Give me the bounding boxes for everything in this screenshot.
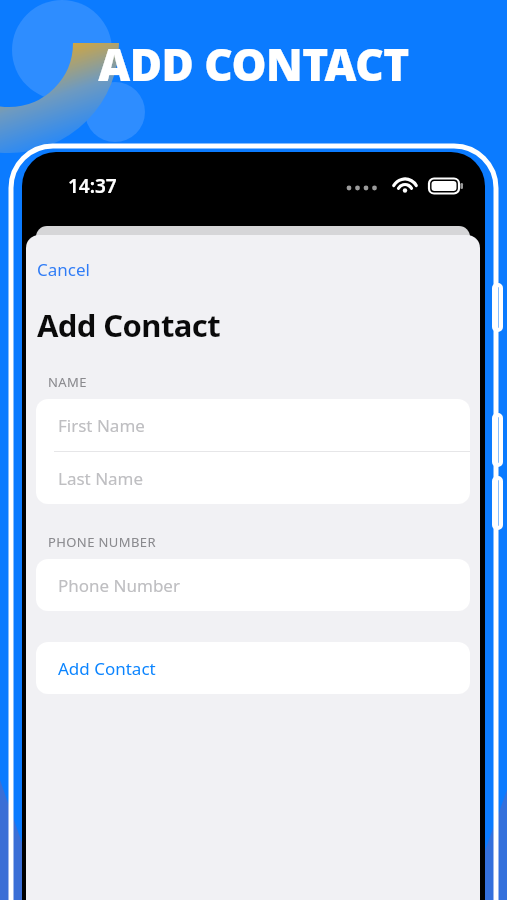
button[interactable]: Last Name	[36, 452, 470, 504]
button[interactable]: Phone Number	[36, 559, 470, 611]
staticText: PHONE NUMBER	[48, 533, 156, 551]
button[interactable]: First Name	[36, 399, 470, 451]
staticText: 14:37	[68, 173, 117, 199]
staticText: NAME	[48, 373, 87, 391]
staticText: Cancel	[37, 258, 90, 281]
staticText: Last Name	[58, 467, 144, 490]
button[interactable]: Cancel	[29, 254, 98, 285]
staticText: ADD CONTACT	[0, 34, 507, 94]
staticText: Phone Number	[58, 574, 180, 597]
staticText: Add Contact	[58, 657, 156, 680]
button[interactable]: Add Contact	[36, 642, 470, 694]
staticText: First Name	[58, 414, 145, 437]
staticText: Add Contact	[37, 304, 220, 346]
